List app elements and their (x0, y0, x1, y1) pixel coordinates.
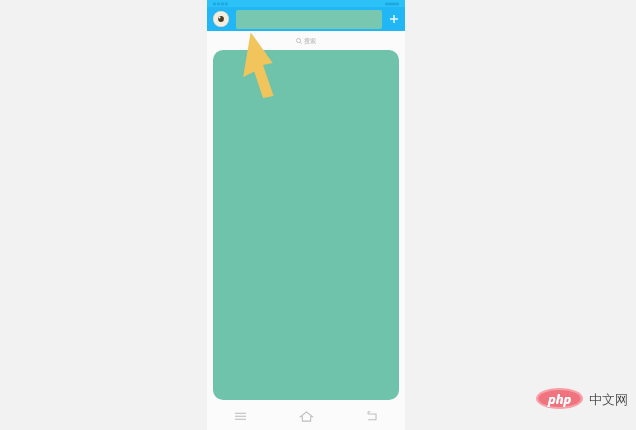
button[interactable]: Back (339, 402, 405, 430)
button[interactable]: 搜索 (207, 31, 405, 50)
staticText: php (548, 390, 572, 408)
button[interactable]: Home (273, 402, 339, 430)
staticText: 搜索 (304, 37, 316, 45)
button[interactable]: Add (388, 13, 400, 25)
button[interactable] (213, 50, 399, 400)
button[interactable]: Recent apps (207, 402, 273, 430)
button[interactable]: Profile (213, 11, 229, 27)
staticText: 中文网 (589, 391, 628, 407)
